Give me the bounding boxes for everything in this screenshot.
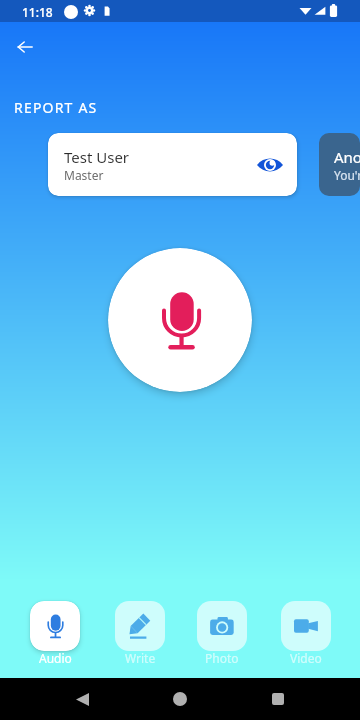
button[interactable]: Photo (197, 601, 247, 667)
staticText: You're hidden (334, 167, 360, 183)
staticText: Audio (39, 650, 72, 666)
staticText: Photo (205, 650, 239, 666)
button[interactable]: Recents (262, 683, 294, 715)
staticText: Video (290, 650, 322, 666)
staticText: Write (125, 650, 156, 666)
button[interactable]: Test User (48, 133, 297, 196)
button[interactable]: Write (115, 601, 165, 667)
button[interactable]: Audio (30, 601, 80, 667)
staticText: 11:18 (22, 4, 53, 20)
staticText: Anonymous (334, 147, 360, 167)
button[interactable]: Video (281, 601, 331, 667)
staticText: REPORT AS (14, 98, 98, 117)
button[interactable]: Back (8, 30, 42, 64)
button[interactable]: Record audio (108, 248, 252, 392)
staticText: Master (64, 167, 104, 183)
button[interactable]: Home (164, 683, 196, 715)
button[interactable]: Anonymous (319, 133, 360, 196)
button[interactable]: Back (66, 683, 98, 715)
staticText: Test User (64, 147, 130, 167)
